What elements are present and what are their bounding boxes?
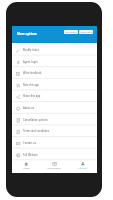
- button[interactable]: Rate this app: [12, 79, 97, 91]
- button[interactable]: GET TICKETS: [64, 30, 78, 34]
- staticText: More options: [17, 32, 37, 36]
- button[interactable]: My Bookings: [40, 159, 68, 173]
- staticText: Modify ticket: [23, 48, 39, 52]
- staticText: My Bookings: [47, 167, 61, 170]
- staticText: Agent Login: [23, 60, 38, 64]
- staticText: AGENT LOGIN: [80, 31, 93, 34]
- button[interactable]: Account: [68, 159, 96, 173]
- button[interactable]: [12, 26, 97, 43]
- button[interactable]: Contact us: [12, 137, 97, 149]
- button[interactable]: About us: [12, 102, 97, 114]
- staticText: Cancellation policies: [23, 118, 48, 122]
- staticText: About us: [23, 106, 34, 110]
- staticText: Full Website: [23, 153, 38, 157]
- button[interactable]: Modify ticket: [12, 44, 97, 56]
- staticText: Contact us: [23, 141, 36, 145]
- button[interactable]: Write feedback: [12, 67, 97, 79]
- button[interactable]: Share this app: [12, 90, 97, 102]
- button[interactable]: AGENT LOGIN: [79, 30, 93, 34]
- staticText: Rate this app: [23, 83, 39, 87]
- staticText: Write feedback: [23, 71, 42, 75]
- button[interactable]: Full Website: [12, 149, 97, 161]
- button[interactable]: Agent Login: [12, 56, 97, 68]
- button[interactable]: Terms and conditions: [12, 125, 97, 137]
- staticText: Home: [23, 167, 30, 170]
- staticText: Terms and conditions: [23, 129, 50, 133]
- staticText: Share this app: [23, 94, 41, 98]
- staticText: Account: [78, 167, 87, 170]
- button[interactable]: Home: [12, 159, 40, 173]
- staticText: GET TICKETS: [65, 31, 77, 34]
- button[interactable]: Cancellation policies: [12, 114, 97, 126]
